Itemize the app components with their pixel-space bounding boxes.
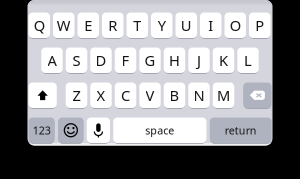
- button[interactable]: space: [113, 117, 206, 143]
- button[interactable]: M: [213, 82, 234, 108]
- button[interactable]: return: [210, 117, 272, 143]
- button[interactable]: G: [139, 47, 161, 73]
- button[interactable]: Shift: [28, 82, 57, 108]
- staticText: S: [72, 50, 80, 70]
- button[interactable]: R: [102, 12, 123, 38]
- staticText: J: [197, 50, 201, 70]
- button[interactable]: Z: [66, 82, 87, 108]
- button[interactable]: Dictation: [87, 117, 110, 143]
- staticText: Y: [158, 15, 166, 35]
- staticText: N: [193, 85, 204, 105]
- button[interactable]: L: [237, 47, 259, 73]
- button[interactable]: W: [53, 12, 74, 38]
- staticText: 123: [33, 123, 51, 137]
- button[interactable]: D: [90, 47, 112, 73]
- button[interactable]: O: [224, 12, 246, 38]
- staticText: B: [169, 85, 179, 105]
- staticText: K: [219, 50, 228, 70]
- button[interactable]: T: [126, 12, 148, 38]
- button[interactable]: B: [164, 82, 185, 108]
- button[interactable]: I: [200, 12, 221, 38]
- button[interactable]: A: [41, 47, 63, 73]
- staticText: D: [95, 50, 106, 70]
- staticText: space: [145, 123, 174, 137]
- button[interactable]: H: [164, 47, 185, 73]
- staticText: F: [121, 50, 129, 70]
- button[interactable]: J: [188, 47, 210, 73]
- staticText: W: [57, 15, 71, 35]
- button[interactable]: X: [90, 82, 112, 108]
- staticText: I: [208, 15, 213, 35]
- staticText: R: [108, 15, 117, 35]
- button[interactable]: K: [213, 47, 234, 73]
- button[interactable]: U: [175, 12, 197, 38]
- staticText: Q: [34, 15, 45, 35]
- button[interactable]: 123: [28, 117, 55, 143]
- staticText: H: [169, 50, 180, 70]
- staticText: A: [47, 50, 56, 70]
- button[interactable]: P: [249, 12, 270, 38]
- button[interactable]: F: [115, 47, 136, 73]
- button[interactable]: C: [115, 82, 136, 108]
- staticText: L: [244, 50, 252, 70]
- button[interactable]: Q: [28, 12, 50, 38]
- staticText: O: [230, 15, 241, 35]
- staticText: return: [225, 123, 257, 137]
- staticText: T: [133, 15, 141, 35]
- staticText: M: [217, 85, 230, 105]
- staticText: C: [121, 85, 130, 105]
- staticText: G: [144, 50, 155, 70]
- button[interactable]: V: [139, 82, 161, 108]
- button[interactable]: S: [66, 47, 87, 73]
- staticText: X: [96, 85, 105, 105]
- button[interactable]: Emoji: [58, 117, 84, 143]
- button[interactable]: Y: [151, 12, 172, 38]
- button[interactable]: E: [77, 12, 99, 38]
- staticText: P: [255, 15, 264, 35]
- button[interactable]: N: [188, 82, 210, 108]
- staticText: E: [84, 15, 92, 35]
- staticText: V: [145, 85, 154, 105]
- staticText: U: [181, 15, 192, 35]
- button[interactable]: Delete: [243, 82, 271, 108]
- staticText: Z: [72, 85, 80, 105]
